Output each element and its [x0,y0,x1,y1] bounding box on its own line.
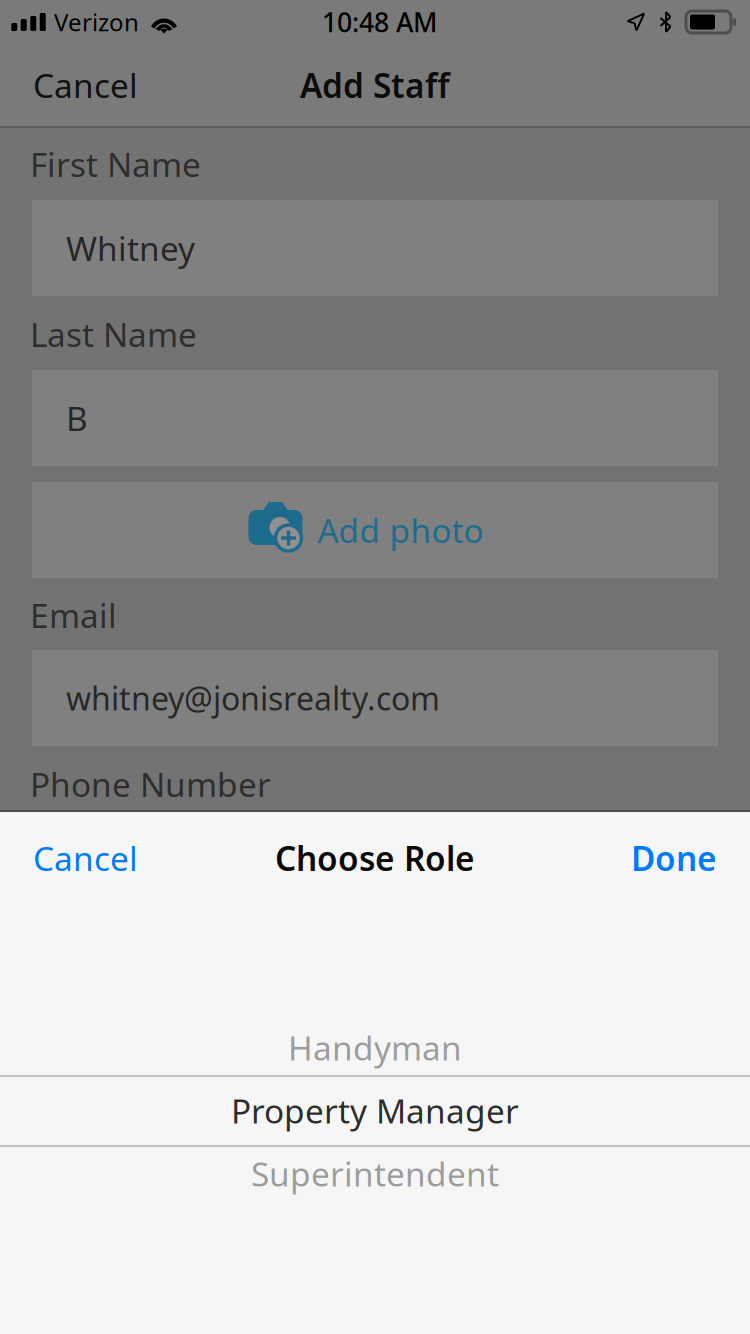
staticText: Verizon [54,6,139,38]
staticText: Phone Number [30,762,271,806]
staticText: Add photo [317,508,483,552]
staticText: Last Name [30,312,197,356]
staticText: Choose Role [275,836,475,880]
staticText: 10:48 AM [322,4,437,40]
button[interactable]: Add photo [32,482,718,578]
staticText: Email [30,593,117,637]
button[interactable]: Cancel [0,812,164,904]
button[interactable]: Superintendent [0,1142,750,1205]
staticText: Add Staff [300,63,450,107]
button[interactable]: Property Manager [0,1079,750,1142]
button[interactable]: Handyman [0,1016,750,1079]
button[interactable]: Cancel [0,44,162,126]
staticText: Done [631,836,717,880]
staticText: whitney@jonisrealty.com [66,677,440,719]
staticText: Cancel [33,63,138,107]
staticText: Property Manager [231,1088,519,1133]
staticText: B [66,396,88,440]
staticText: Whitney [66,226,195,270]
staticText: Handyman [288,1025,462,1070]
staticText: First Name [30,142,201,186]
button[interactable]: Done [605,812,750,904]
staticText: Superintendent [251,1151,499,1196]
staticText: Cancel [33,836,138,880]
